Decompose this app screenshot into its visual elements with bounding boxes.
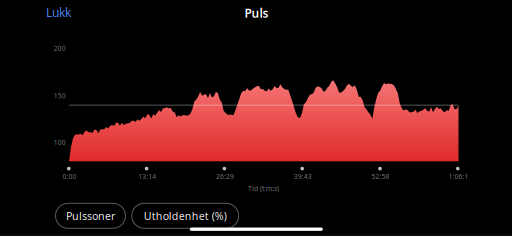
button[interactable]: Lukk <box>38 0 79 25</box>
staticText: Lukk <box>46 4 71 20</box>
staticText: 1:06:1 <box>448 172 468 181</box>
staticText: 52:58 <box>372 172 390 181</box>
staticText: Pulssoner <box>66 209 115 223</box>
staticText: 39:43 <box>294 172 312 181</box>
staticText: 13:14 <box>138 172 156 181</box>
staticText: 150 <box>54 91 66 100</box>
staticText: 200 <box>54 44 66 53</box>
staticText: Puls <box>244 5 268 21</box>
button[interactable]: Pulssoner <box>55 203 125 228</box>
staticText: 26:29 <box>216 172 234 181</box>
staticText: Utholdenhet (%) <box>144 209 227 223</box>
staticText: 100 <box>54 138 66 147</box>
button[interactable]: Utholdenhet (%) <box>132 203 239 228</box>
staticText: Tid (t:m:s) <box>248 184 279 193</box>
staticText: 0:00 <box>62 172 76 181</box>
